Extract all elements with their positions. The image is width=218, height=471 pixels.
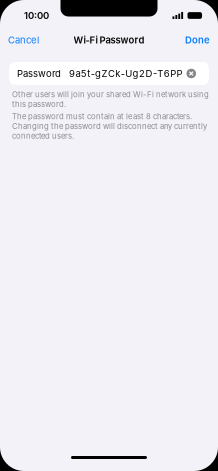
staticText: The password must contain at least 8 cha…	[12, 112, 192, 121]
button[interactable]: Done	[185, 34, 210, 46]
staticText: Cancel	[8, 34, 39, 46]
staticText: 10:00	[24, 10, 49, 21]
staticText: Done	[185, 34, 210, 46]
staticText: Changing the password will disconnect an…	[12, 122, 207, 131]
staticText: Wi-Fi Password	[73, 34, 144, 46]
staticText: Password	[17, 68, 61, 79]
staticText: this password.	[12, 100, 66, 109]
staticText: connected users.	[12, 131, 74, 141]
button[interactable]: Clear text	[186, 69, 196, 78]
staticText: 9a5t-gZCk-Ug2D-T6PP	[69, 68, 183, 79]
staticText: Other users will join your shared Wi-Fi …	[12, 90, 209, 99]
button[interactable]: Cancel	[8, 34, 39, 46]
button[interactable]: Password	[9, 62, 209, 85]
